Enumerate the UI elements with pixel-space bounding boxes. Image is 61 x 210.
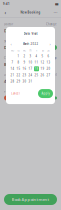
button[interactable]: 29 [15, 79, 21, 84]
staticText: 5 [41, 54, 43, 58]
staticText: Map [52, 56, 57, 60]
staticText: 10 [28, 61, 32, 64]
staticText: 11 [34, 61, 38, 64]
button[interactable]: Duration [4, 70, 57, 87]
staticText: Duration [4, 73, 16, 77]
staticText: Service [4, 39, 13, 43]
button[interactable]: 6 [45, 53, 51, 59]
staticText: Cancel [11, 92, 20, 95]
button[interactable]: More [53, 9, 58, 15]
staticText: 22 [16, 73, 20, 77]
button[interactable]: 14 [9, 66, 15, 71]
button[interactable]: 5 [39, 53, 45, 59]
button[interactable]: 9 [21, 60, 27, 65]
button[interactable]: 7 [9, 60, 15, 65]
staticText: 2 [23, 54, 25, 58]
staticText: ‹ [4, 9, 6, 16]
button[interactable]: Service [4, 36, 57, 53]
button[interactable]: 25 [33, 72, 39, 78]
button[interactable]: Cancel [8, 89, 23, 98]
button[interactable]: 27 [45, 72, 51, 78]
staticText: ▮▮▮ [55, 2, 58, 5]
button[interactable]: 28 [9, 79, 15, 84]
button[interactable]: 11 [33, 60, 39, 65]
staticText: 13 [46, 61, 50, 64]
button[interactable]: 24 [27, 72, 33, 78]
staticText: 29 [16, 80, 20, 83]
button[interactable]: 2 [21, 53, 27, 59]
button[interactable]: 12 [39, 60, 45, 65]
staticText: 1 [17, 54, 19, 58]
button[interactable]: 1 [15, 53, 21, 59]
staticText: 6 [47, 54, 49, 58]
button[interactable]: Doctor [4, 19, 57, 36]
staticText: 12 [40, 61, 44, 64]
staticText: 7 [11, 61, 13, 64]
staticText: 45 minutes [4, 79, 26, 84]
staticText: We [22, 49, 26, 52]
staticText: 31 [28, 80, 32, 83]
staticText: Change [46, 22, 57, 26]
staticText: 18 [34, 67, 38, 70]
button[interactable]: 15 [15, 66, 21, 71]
button[interactable]: 19 [39, 66, 45, 71]
button[interactable]: Previous month [8, 41, 14, 46]
staticText: Dental Check [4, 45, 30, 50]
button[interactable]: 4 [33, 53, 39, 59]
staticText: Bay Street [4, 62, 24, 67]
staticText: 9:41 [3, 2, 10, 6]
staticText: Doctor [4, 22, 13, 26]
staticText: Book Appointment [11, 197, 49, 202]
button[interactable]: Apply [38, 89, 53, 98]
staticText: Clinic [4, 56, 12, 60]
staticText: Tu [17, 49, 20, 52]
staticText: Payment [4, 90, 15, 93]
button[interactable]: 8 [15, 60, 21, 65]
button[interactable]: 13 [45, 60, 51, 65]
staticText: 28 [10, 80, 14, 83]
button[interactable]: 3 [27, 53, 33, 59]
button[interactable]: 21 [9, 72, 15, 78]
staticText: Edit [52, 73, 57, 77]
button[interactable]: 31 [27, 79, 33, 84]
button[interactable]: 26 [39, 72, 45, 78]
staticText: ⋯ [53, 10, 57, 15]
staticText: 23 [22, 73, 26, 77]
staticText: Mo [10, 49, 14, 52]
staticText: Apply [41, 92, 49, 95]
staticText: 27 [46, 73, 50, 77]
staticText: 14 [10, 67, 14, 70]
staticText: 15 [16, 67, 20, 70]
button[interactable]: 16 [21, 66, 27, 71]
staticText: 24 [28, 73, 32, 77]
button[interactable]: Next month [47, 41, 53, 46]
staticText: 30 [22, 80, 26, 83]
staticText: Fr [35, 49, 37, 52]
staticText: Su [47, 49, 50, 52]
staticText: Th [29, 49, 32, 52]
button[interactable]: 17 [27, 66, 33, 71]
staticText: 17 [28, 67, 32, 70]
staticText: 16 [22, 67, 26, 70]
button[interactable]: Book Appointment [4, 194, 57, 205]
button[interactable]: Clinic [4, 53, 57, 70]
button[interactable]: 22 [15, 72, 21, 78]
staticText: 26 [40, 73, 44, 77]
button[interactable]: Visa 4821 [4, 95, 57, 100]
button[interactable]: 23 [21, 72, 27, 78]
button[interactable]: Back [3, 9, 8, 15]
button[interactable]: 10 [27, 60, 33, 65]
button[interactable]: 20 [45, 66, 51, 71]
staticText: 9 [23, 61, 25, 64]
staticText: Date Visit [23, 32, 37, 35]
staticText: 4 [35, 54, 37, 58]
staticText: New Booking [20, 11, 40, 14]
button[interactable]: 30 [21, 79, 27, 84]
button[interactable]: 18 [33, 66, 39, 71]
